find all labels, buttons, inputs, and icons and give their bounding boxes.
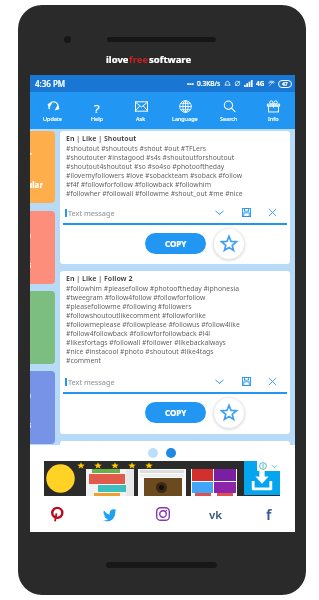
button[interactable]: Update: [30, 92, 75, 129]
button[interactable]: Clear: [268, 472, 277, 481]
button[interactable]: Clear: [268, 208, 277, 217]
button[interactable]: Expand: [214, 471, 225, 482]
staticText: #follow4followback #followforfollowback …: [66, 329, 211, 338]
staticText: ular: [30, 179, 43, 190]
button[interactable]: Expand: [214, 376, 225, 387]
staticText: ): [30, 229, 31, 240]
staticText: #follow #followme: [66, 454, 126, 463]
button[interactable]: Instagram: [136, 496, 189, 532]
staticText: ilove: [106, 53, 129, 66]
staticText: Search: [220, 115, 238, 122]
staticText: ): [30, 389, 31, 400]
staticText: En | Like | Shoutout: [66, 134, 137, 144]
button[interactable]: Clear: [268, 377, 277, 386]
staticText: r: [30, 149, 32, 160]
button[interactable]: ?: [75, 92, 119, 129]
staticText: #followher #followall #followme #shout_o…: [66, 189, 243, 198]
staticText: #pleasefollowme #following #followers: [66, 302, 192, 311]
button[interactable]: COPY: [145, 233, 206, 254]
button[interactable]: Pinterest: [30, 496, 83, 532]
button[interactable]: r: [30, 131, 55, 203]
staticText: Ask: [136, 115, 146, 122]
button[interactable]: Install: [44, 461, 280, 496]
button[interactable]: Favorite: [212, 227, 246, 261]
button[interactable]: [30, 291, 55, 364]
staticText: #shoutouter #instagood #s4s #shoutoutfor…: [66, 153, 235, 162]
button[interactable]: Save: [242, 377, 251, 386]
button[interactable]: ): [30, 371, 55, 444]
staticText: COPY: [165, 407, 187, 418]
staticText: s: [30, 259, 32, 270]
button[interactable]: Favorite: [212, 396, 246, 430]
staticText: #comment: [66, 356, 101, 365]
staticText: 47: [282, 81, 288, 88]
button[interactable]: Expand: [214, 207, 225, 218]
staticText: 4:36 PM: [35, 78, 66, 89]
button[interactable]: En | Like | Shoutout: [60, 131, 290, 264]
staticText: Update: [43, 115, 62, 122]
staticText: #nice #instacool #photo #shoutout #like4…: [66, 347, 214, 356]
button[interactable]: Save: [242, 472, 251, 481]
staticText: f: [266, 505, 272, 524]
staticText: #shoutout4shoutout #so #so4so #photoofth…: [66, 162, 225, 171]
button[interactable]: COPY: [145, 402, 206, 423]
button[interactable]: Favorite: [212, 490, 246, 501]
button[interactable]: Language: [163, 92, 207, 129]
button[interactable]: En | Like | Follow 2: [60, 271, 290, 434]
staticText: •••: [187, 80, 194, 88]
staticText: 4G: [256, 79, 265, 88]
staticText: En | Like | Follow 2: [66, 274, 133, 284]
staticText: software: [149, 53, 192, 66]
staticText: COPY: [165, 238, 187, 249]
staticText: Help: [91, 115, 103, 122]
staticText: #likesfortags #followall #follower #like…: [66, 338, 226, 347]
button[interactable]: Twitter: [83, 496, 136, 532]
button[interactable]: ): [30, 211, 55, 284]
staticText: Language: [172, 115, 198, 122]
staticText: #followhim #pleasefollow #photooftheday …: [66, 284, 239, 293]
staticText: Text message: [68, 472, 115, 482]
button[interactable]: En | Like | Follow 1: [60, 441, 290, 501]
staticText: #tweegram #follow4follow #followforfollo…: [66, 293, 206, 302]
staticText: Text message: [68, 377, 115, 387]
button[interactable]: Save: [242, 208, 251, 217]
button[interactable]: Ask: [119, 92, 163, 129]
button[interactable]: Search: [207, 92, 251, 129]
staticText: 0.3KB/s: [197, 79, 221, 88]
staticText: #shoutout #shoutouts #shout #out #TFLers: [66, 144, 207, 153]
staticText: #followshoutoutlikecomment #followforlik…: [66, 311, 206, 320]
staticText: #f4f #followforfollow #followback #follo…: [66, 180, 211, 189]
button[interactable]: VK: [189, 496, 242, 532]
staticText: ?: [94, 100, 100, 113]
staticText: #followmeplease #followplease #followus …: [66, 320, 240, 329]
staticText: #ilovemyfollowers #love #sobackteam #sob…: [66, 171, 243, 180]
staticText: vk: [209, 507, 223, 522]
button[interactable]: Facebook: [242, 496, 295, 532]
staticText: free: [129, 53, 149, 66]
staticText: s: [30, 419, 32, 430]
staticText: Text message: [68, 208, 115, 218]
staticText: Info: [268, 115, 279, 122]
button[interactable]: Info: [251, 92, 295, 129]
button[interactable]: Install: [244, 461, 280, 495]
